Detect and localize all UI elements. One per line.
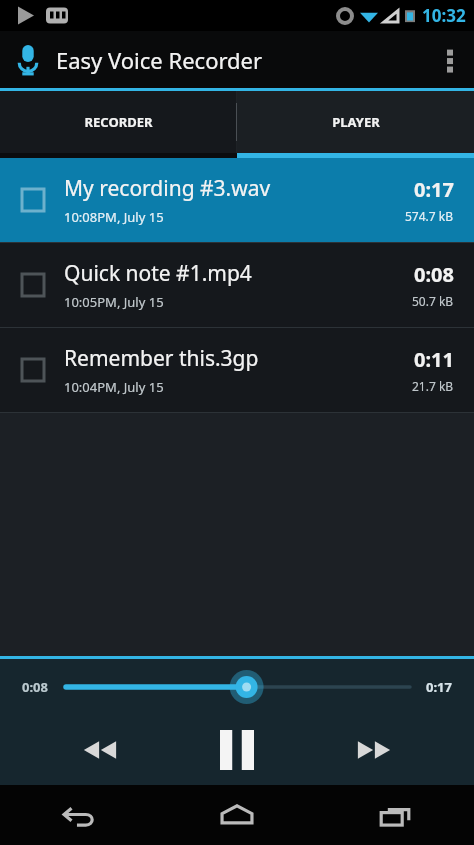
button[interactable]: Back [0, 785, 158, 845]
staticText: PLAYER [332, 113, 380, 131]
staticText: 21.7 kB [412, 378, 454, 394]
button[interactable]: Select Remember this.3gp [0, 328, 474, 412]
staticText: 10:08PM, July 15 [64, 208, 164, 226]
button[interactable]: Select My recording #3.wav [0, 158, 474, 242]
button[interactable]: Rewind [70, 723, 130, 777]
staticText: 0:08 [22, 678, 48, 696]
button[interactable]: Recent apps [316, 785, 474, 845]
staticText: Easy Voice Recorder [56, 45, 263, 75]
staticText: 50.7 kB [412, 293, 454, 309]
button[interactable]: RECORDER [0, 91, 236, 153]
staticText: 0:17 [414, 176, 454, 203]
button[interactable]: PLAYER [237, 91, 474, 153]
button[interactable]: Fast forward [344, 723, 404, 777]
staticText: 574.7 kB [405, 208, 454, 224]
staticText: Remember this.3gp [64, 344, 259, 373]
button[interactable]: Select Quick note #1.mp4 [0, 243, 474, 327]
staticText: 10:32 [422, 4, 466, 27]
staticText: 0:11 [414, 346, 454, 373]
button[interactable]: More options [426, 31, 474, 88]
staticText: 10:05PM, July 15 [64, 293, 164, 311]
staticText: RECORDER [84, 113, 153, 131]
staticText: 0:17 [426, 678, 452, 696]
staticText: 0:08 [414, 261, 454, 288]
button[interactable]: Seek [66, 667, 410, 707]
staticText: 10:04PM, July 15 [64, 378, 164, 396]
button[interactable]: Pause [204, 721, 270, 779]
button[interactable]: Home [158, 785, 316, 845]
staticText: My recording #3.wav [64, 174, 271, 203]
button[interactable]: Select Quick note #1.mp4 [20, 272, 46, 298]
button[interactable]: Select Remember this.3gp [20, 357, 46, 383]
staticText: Quick note #1.mp4 [64, 259, 252, 288]
button[interactable]: Select My recording #3.wav [20, 187, 46, 213]
